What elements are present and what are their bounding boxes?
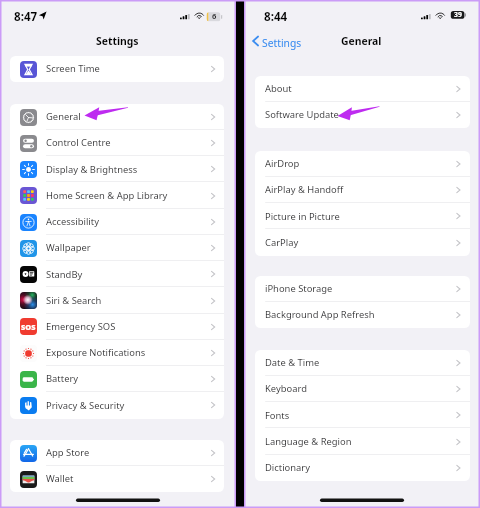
button[interactable] — [10, 183, 224, 209]
staticText: iPhone Storage — [265, 282, 333, 295]
staticText: Date & Time — [265, 356, 320, 369]
staticText: Emergency SOS — [46, 320, 116, 333]
staticText: Settings — [262, 36, 302, 50]
staticText: Wallpaper — [46, 241, 91, 254]
button[interactable] — [10, 235, 224, 261]
button[interactable]: Back to Settings — [248, 33, 308, 50]
staticText: CarPlay — [265, 236, 299, 249]
staticText: Exposure Notifications — [46, 346, 146, 359]
staticText: StandBy — [46, 268, 83, 281]
button[interactable] — [255, 376, 470, 402]
staticText: 6 — [212, 11, 217, 21]
staticText: AirPlay & Handoff — [265, 183, 344, 196]
staticText: Accessibility — [46, 215, 99, 228]
staticText: Battery — [46, 372, 79, 385]
staticText: 39 — [454, 10, 462, 19]
staticText: Keyboard — [265, 382, 307, 395]
staticText: Background App Refresh — [265, 308, 375, 321]
button[interactable] — [255, 350, 470, 376]
button[interactable] — [10, 209, 224, 235]
button[interactable] — [10, 261, 224, 287]
button[interactable] — [10, 56, 224, 82]
staticText: Settings — [96, 34, 139, 48]
button[interactable] — [255, 151, 470, 177]
button[interactable] — [10, 466, 224, 492]
staticText: Siri & Search — [46, 294, 102, 307]
button[interactable] — [10, 130, 224, 156]
button[interactable] — [10, 288, 224, 314]
button[interactable] — [10, 440, 224, 466]
button[interactable] — [10, 314, 224, 340]
staticText: General — [341, 34, 382, 48]
button[interactable] — [255, 203, 470, 229]
staticText: About — [265, 82, 292, 95]
staticText: Wallet — [46, 472, 74, 485]
staticText: General — [46, 110, 81, 123]
button[interactable] — [255, 302, 470, 328]
staticText: Software Update — [265, 108, 339, 121]
staticText: 8:47 — [14, 9, 38, 25]
button[interactable] — [255, 402, 470, 428]
staticText: App Store — [46, 446, 90, 459]
staticText: AirDrop — [265, 157, 300, 170]
button[interactable] — [10, 104, 224, 130]
button[interactable] — [10, 366, 224, 392]
staticText: Control Centre — [46, 136, 111, 149]
button[interactable] — [10, 340, 224, 366]
staticText: Privacy & Security — [46, 399, 125, 412]
staticText: Home Screen & App Library — [46, 189, 168, 202]
staticText: SOS — [21, 322, 36, 332]
button[interactable] — [255, 230, 470, 256]
button[interactable] — [255, 76, 470, 102]
button[interactable] — [10, 156, 224, 182]
staticText: Screen Time — [46, 62, 100, 75]
button[interactable] — [255, 429, 470, 455]
staticText: Fonts — [265, 409, 290, 422]
button[interactable] — [10, 392, 224, 418]
staticText: Display & Brightness — [46, 163, 138, 176]
button[interactable] — [255, 102, 470, 128]
staticText: Language & Region — [265, 435, 352, 448]
staticText: 8:44 — [264, 9, 288, 25]
button[interactable] — [255, 276, 470, 302]
button[interactable] — [255, 455, 470, 481]
staticText: Dictionary — [265, 461, 311, 474]
staticText: Picture in Picture — [265, 210, 340, 223]
button[interactable] — [255, 177, 470, 203]
